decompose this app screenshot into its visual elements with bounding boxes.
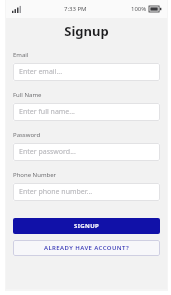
staticText: Full Name: [13, 91, 42, 99]
staticText: SIGNUP: [74, 222, 100, 230]
staticText: Enter phone number...: [19, 187, 93, 197]
staticText: ALREADY HAVE ACCOUNT?: [44, 244, 130, 252]
staticText: 7:33 PM: [64, 5, 87, 13]
staticText: Password: [13, 131, 41, 139]
staticText: Email: [13, 51, 29, 59]
staticText: Enter full name...: [19, 107, 75, 117]
button[interactable]: ALREADY HAVE ACCOUNT?: [13, 240, 160, 256]
staticText: Phone Number: [13, 171, 57, 179]
button[interactable]: Enter email...: [13, 63, 160, 81]
button[interactable]: Enter phone number...: [13, 183, 160, 201]
button[interactable]: Enter password...: [13, 143, 160, 161]
button[interactable]: SIGNUP: [13, 218, 160, 234]
staticText: Enter email...: [19, 67, 63, 77]
staticText: Enter password...: [19, 147, 76, 157]
button[interactable]: Enter full name...: [13, 103, 160, 121]
staticText: Signup: [6, 22, 167, 40]
staticText: 100%: [131, 5, 147, 13]
